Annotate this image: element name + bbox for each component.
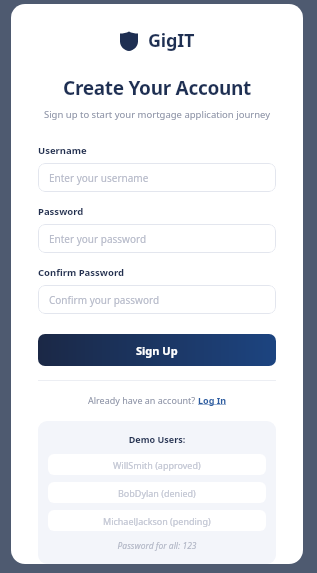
staticText: Confirm your password xyxy=(49,293,160,307)
staticText: Log In xyxy=(198,394,227,406)
staticText: GigIT xyxy=(148,28,195,53)
staticText: MichaelJackson (pending) xyxy=(103,515,211,527)
staticText: Already have an account? xyxy=(88,394,198,406)
button[interactable]: Enter your password xyxy=(38,224,276,253)
button[interactable]: Sign Up xyxy=(38,334,276,366)
staticText: Password for all: 123 xyxy=(48,540,266,552)
staticText: Demo Users: xyxy=(48,433,266,445)
button[interactable]: Confirm your password xyxy=(38,285,276,314)
staticText: BobDylan (denied) xyxy=(118,487,196,499)
staticText: Confirm Password xyxy=(38,266,124,279)
staticText: Enter your username xyxy=(49,171,149,185)
staticText: Enter your password xyxy=(49,232,147,246)
button[interactable]: Log In xyxy=(198,394,227,406)
staticText: Sign up to start your mortgage applicati… xyxy=(23,108,291,121)
staticText: Username xyxy=(38,144,87,157)
button[interactable]: MichaelJackson (pending) xyxy=(48,510,266,531)
staticText: WillSmith (approved) xyxy=(113,459,201,471)
button[interactable]: BobDylan (denied) xyxy=(48,482,266,503)
other: GigIT logo xyxy=(119,31,139,51)
staticText: Create Your Account xyxy=(11,75,303,101)
button[interactable]: Enter your username xyxy=(38,163,276,192)
staticText: Password xyxy=(38,205,84,218)
staticText: Sign Up xyxy=(136,343,178,358)
button[interactable]: WillSmith (approved) xyxy=(48,454,266,475)
